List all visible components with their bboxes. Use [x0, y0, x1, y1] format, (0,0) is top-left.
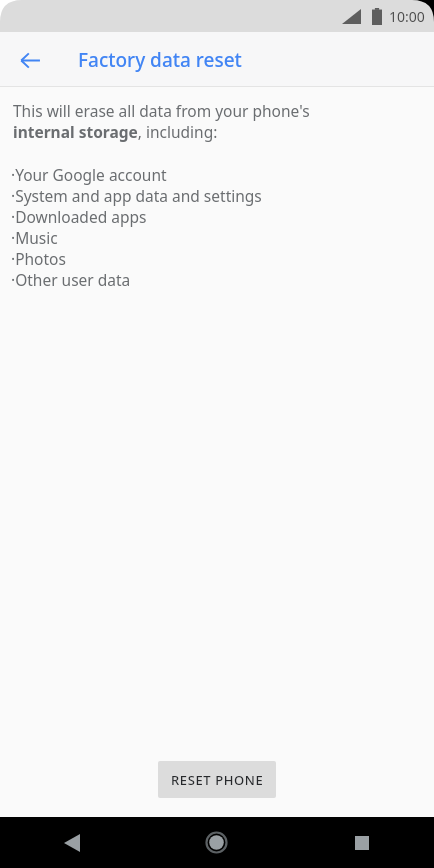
button[interactable]: Recent apps — [289, 817, 434, 868]
button[interactable]: Back — [0, 817, 144, 868]
button[interactable]: Home — [144, 817, 289, 868]
staticText: ·System and app data and settings — [11, 185, 262, 206]
staticText: ·Other user data — [11, 269, 131, 290]
staticText: 10:00 — [389, 7, 425, 26]
staticText: ·Photos — [11, 248, 66, 269]
staticText: ·Your Google account — [11, 164, 167, 185]
staticText: RESET PHONE — [171, 771, 264, 789]
button[interactable]: RESET PHONE — [158, 761, 276, 798]
staticText: Factory data reset — [78, 47, 242, 73]
staticText: ·Downloaded apps — [11, 206, 147, 227]
button[interactable]: Back — [10, 40, 50, 80]
staticText: This will erase all data from your phone… — [13, 100, 310, 143]
staticText: ·Music — [11, 227, 58, 248]
